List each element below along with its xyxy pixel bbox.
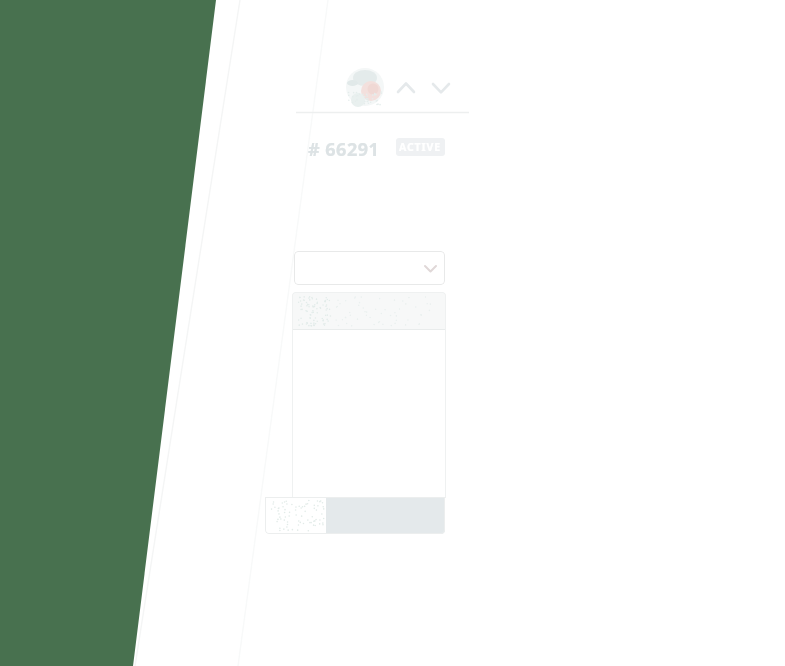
staticText: ACTIVE	[399, 140, 442, 154]
button[interactable]	[429, 76, 453, 100]
staticText: # 66291	[308, 137, 380, 162]
button[interactable]	[394, 76, 418, 100]
button[interactable]	[294, 251, 445, 285]
button[interactable]	[265, 497, 445, 534]
